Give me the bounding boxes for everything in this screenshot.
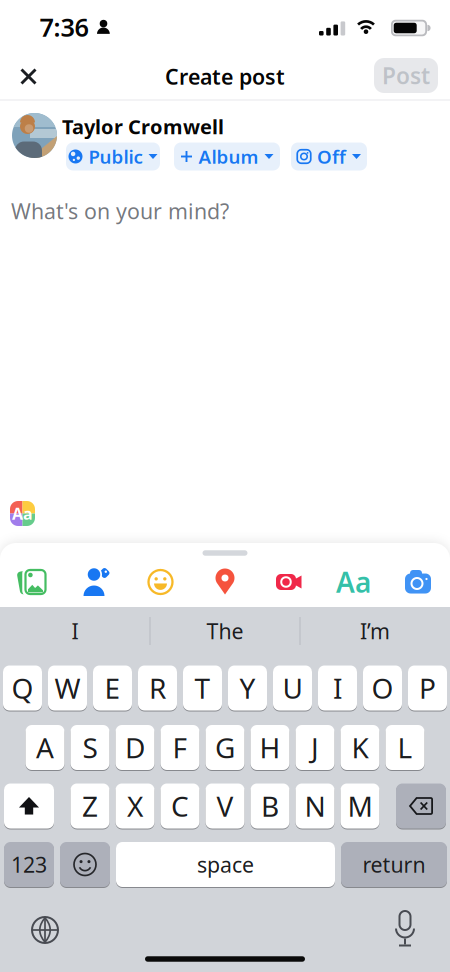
button[interactable] [25,910,65,950]
button[interactable]: E [93,664,132,711]
staticText: O [371,669,393,707]
button[interactable]: U [273,664,312,711]
button[interactable]: 123 [4,841,54,888]
button[interactable]: Post [374,58,438,93]
staticText: L [397,729,412,766]
button[interactable] [4,782,54,829]
button[interactable]: H [250,724,289,771]
button[interactable]: X [115,782,154,829]
button[interactable]: The [155,611,295,651]
staticText: Z [82,787,98,825]
button[interactable] [137,562,183,602]
staticText: S [82,729,97,766]
staticText: I [71,617,78,645]
staticText: 123 [11,850,47,879]
button[interactable]: Public [66,142,160,170]
button[interactable]: W [48,664,87,711]
button[interactable]: Q [3,664,42,711]
button[interactable]: Aa [8,499,37,528]
button[interactable]: A [25,724,64,771]
staticText: What's on your mind? [11,197,229,225]
staticText: K [351,729,368,766]
staticText: M [347,787,372,825]
staticText: W [54,669,80,707]
button[interactable]: D [115,724,154,771]
staticText: C [171,787,189,825]
staticText: A [36,729,54,766]
button[interactable]: Aa [330,562,376,602]
button[interactable]: I’m [305,611,445,651]
button[interactable] [11,59,45,93]
button[interactable] [202,562,248,602]
staticText: V [216,787,233,825]
staticText: P [419,669,436,707]
button[interactable]: L [385,724,424,771]
staticText: Aa [12,503,33,524]
staticText: Off [317,144,346,169]
staticText: D [125,729,145,766]
staticText: Create post [165,62,285,91]
staticText: G [215,729,235,766]
staticText: Album [198,144,258,169]
button[interactable]: N [295,782,334,829]
staticText: return [362,850,425,879]
staticText: T [194,669,210,707]
button[interactable] [385,907,425,951]
staticText: J [311,729,319,766]
button[interactable]: space [116,841,335,888]
staticText: Q [11,669,33,707]
button[interactable]: I [318,664,357,711]
button[interactable] [10,562,56,602]
staticText: X [127,787,143,825]
staticText: The [206,617,243,645]
staticText: I’m [360,617,390,645]
button[interactable]: G [205,724,244,771]
button[interactable] [395,562,441,602]
button[interactable]: I [5,611,145,651]
button[interactable]: V [205,782,244,829]
button[interactable]: R [138,664,177,711]
button[interactable]: O [363,664,402,711]
button[interactable]: return [341,841,447,888]
staticText: Public [88,144,142,169]
button[interactable]: S [70,724,109,771]
button[interactable] [73,562,119,602]
button[interactable]: Off [291,142,367,170]
button[interactable]: Y [228,664,267,711]
staticText: E [104,669,120,707]
button[interactable]: M [340,782,379,829]
button[interactable]: Z [70,782,109,829]
button[interactable] [396,782,446,829]
staticText: B [261,787,279,825]
staticText: Taylor Cromwell [62,113,224,140]
button[interactable]: P [408,664,447,711]
staticText: 7:36 [39,10,88,44]
button[interactable]: F [160,724,199,771]
button[interactable]: K [340,724,379,771]
staticText: Aa [336,563,371,601]
button[interactable] [12,113,57,158]
button[interactable]: J [295,724,334,771]
button[interactable]: B [250,782,289,829]
staticText: Post [382,60,430,90]
staticText: N [304,787,325,825]
staticText: I [333,669,342,707]
staticText: F [172,729,187,766]
button[interactable]: C [160,782,199,829]
staticText: space [197,850,254,879]
staticText: U [282,669,302,707]
staticText: Y [239,669,255,707]
button[interactable] [60,841,110,888]
button[interactable]: T [183,664,222,711]
button[interactable] [266,562,312,602]
staticText: H [259,729,280,766]
staticText: R [149,669,166,707]
button[interactable]: Album [174,142,280,170]
